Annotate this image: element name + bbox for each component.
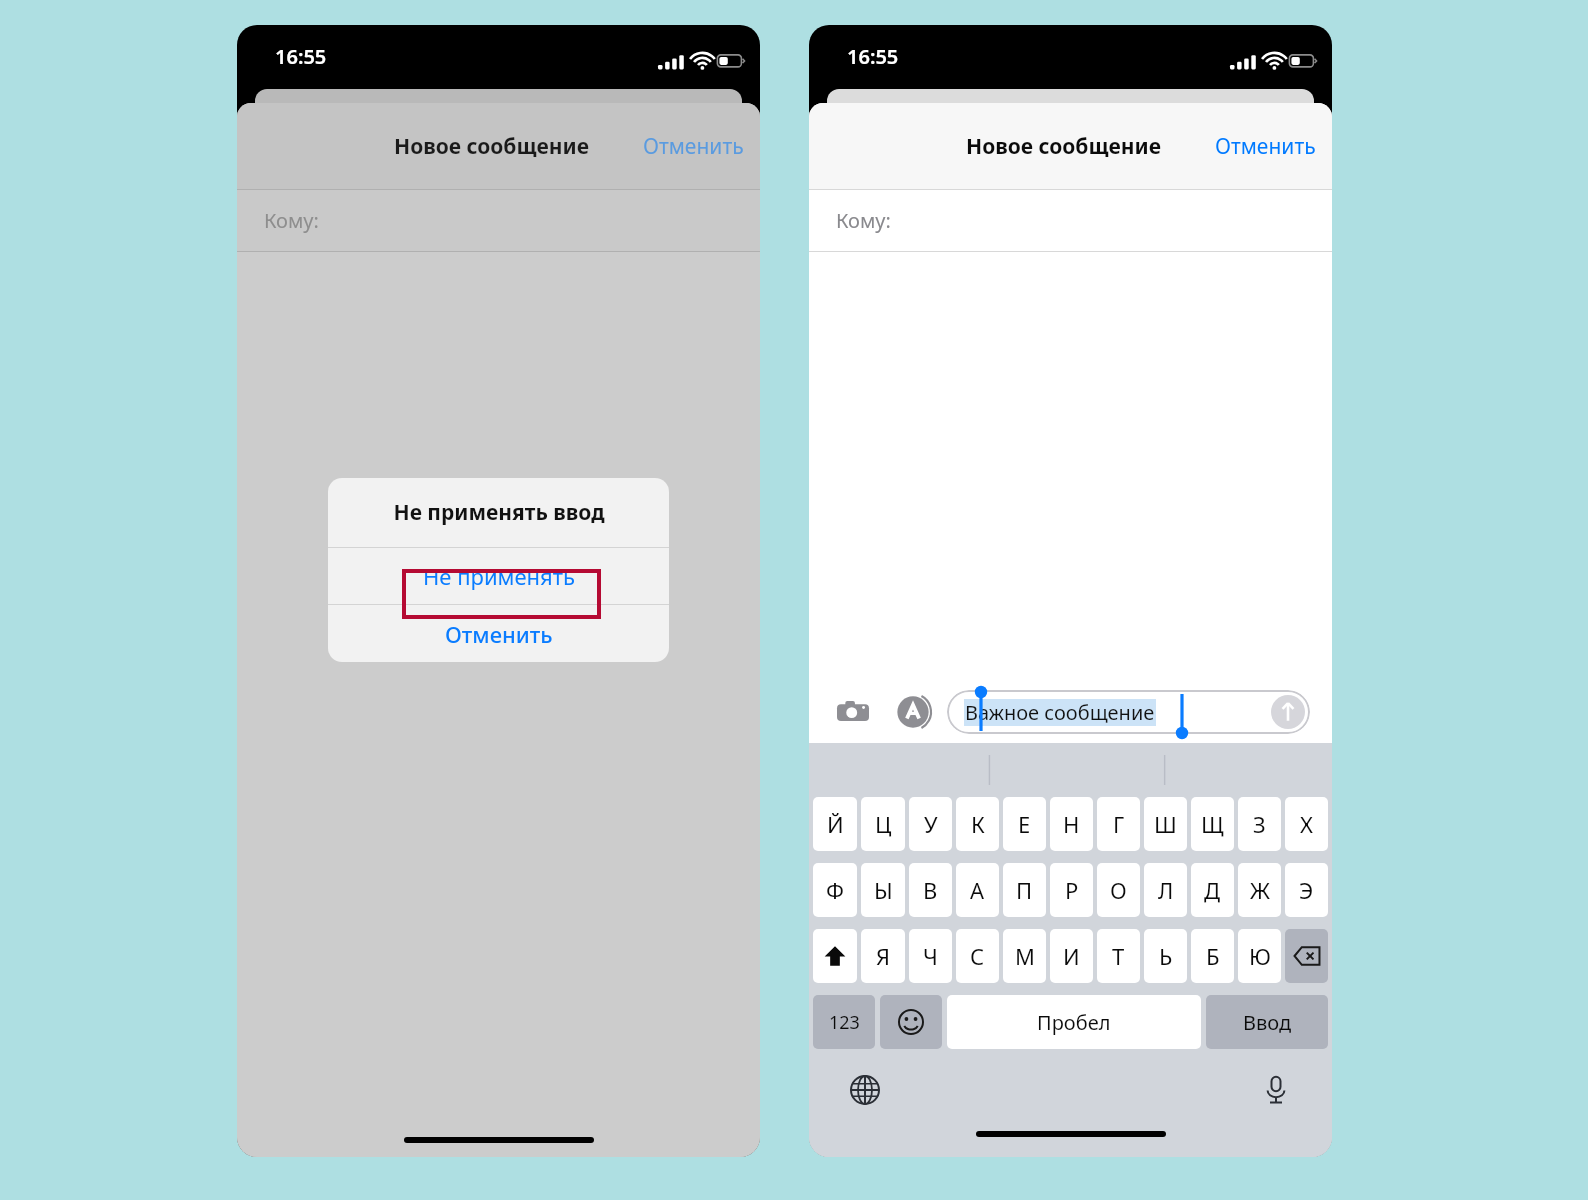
button[interactable]: Ж	[1238, 863, 1281, 917]
button[interactable]: Ф	[813, 863, 857, 917]
button[interactable]: Л	[1144, 863, 1187, 917]
staticText: У	[924, 809, 938, 839]
staticText: Я	[876, 941, 891, 971]
button[interactable]: Сменить язык	[845, 1070, 885, 1110]
button[interactable]: Ввод	[1206, 995, 1328, 1049]
staticText: П	[1016, 875, 1033, 905]
staticText: Х	[1300, 809, 1313, 839]
staticText: В	[923, 875, 938, 905]
staticText: Ж	[1250, 875, 1270, 905]
button[interactable]: Отправить	[1271, 695, 1305, 729]
button[interactable]: А	[956, 863, 999, 917]
button[interactable]: П	[1003, 863, 1046, 917]
staticText: Новое сообщение	[966, 132, 1161, 161]
staticText: Р	[1065, 875, 1079, 905]
button[interactable]: Э	[1285, 863, 1328, 917]
button[interactable]: Й	[813, 797, 857, 851]
staticText: Ы	[874, 875, 893, 905]
button[interactable]: О	[1097, 863, 1140, 917]
staticText: Пробел	[1037, 1009, 1111, 1036]
button[interactable]: Я	[861, 929, 905, 983]
staticText: И	[1063, 941, 1080, 971]
button[interactable]: Важное сообщение	[947, 690, 1310, 734]
staticText: Ц	[875, 809, 892, 839]
staticText: А	[970, 875, 985, 905]
button[interactable]: Б	[1191, 929, 1234, 983]
staticText: Не применять	[423, 561, 575, 591]
staticText: Е	[1018, 809, 1031, 839]
staticText: Б	[1206, 941, 1220, 971]
button[interactable]: Магазин приложений	[893, 692, 933, 732]
staticText: 16:55	[847, 43, 899, 70]
staticText: Г	[1113, 809, 1125, 839]
button[interactable]: Н	[1050, 797, 1093, 851]
staticText: Отменить	[1215, 132, 1316, 161]
button[interactable]: Ч	[909, 929, 952, 983]
staticText: М	[1015, 941, 1035, 971]
button[interactable]: Камера	[833, 692, 873, 732]
staticText: Ввод	[1243, 1009, 1292, 1036]
staticText: Кому:	[264, 207, 319, 234]
staticText: Щ	[1201, 809, 1224, 839]
button[interactable]: Щ	[1191, 797, 1234, 851]
button[interactable]: Shift	[813, 929, 857, 983]
staticText: Д	[1204, 875, 1221, 905]
button[interactable]: Не применять	[328, 548, 669, 604]
button[interactable]: У	[909, 797, 952, 851]
staticText: З	[1253, 809, 1266, 839]
button[interactable]: Т	[1097, 929, 1140, 983]
button[interactable]: Удалить	[1285, 929, 1328, 983]
staticText: Ь	[1159, 941, 1173, 971]
button[interactable]: В	[909, 863, 952, 917]
button[interactable]: Отменить	[1199, 122, 1332, 171]
button[interactable]: 123	[813, 995, 875, 1049]
button[interactable]: Ы	[861, 863, 905, 917]
button[interactable]: З	[1238, 797, 1281, 851]
staticText: Не применять ввод	[393, 498, 605, 527]
staticText: Л	[1158, 875, 1174, 905]
button[interactable]: Х	[1285, 797, 1328, 851]
button[interactable]: Отменить	[328, 605, 669, 662]
button[interactable]: И	[1050, 929, 1093, 983]
button[interactable]: Ь	[1144, 929, 1187, 983]
button[interactable]: Г	[1097, 797, 1140, 851]
staticText: К	[971, 809, 985, 839]
button[interactable]: С	[956, 929, 999, 983]
staticText: Отменить	[643, 132, 744, 161]
staticText: Э	[1299, 875, 1314, 905]
button[interactable]: Отменить	[627, 122, 760, 171]
staticText: Кому:	[836, 207, 891, 234]
staticText: Важное сообщение	[965, 699, 1155, 726]
staticText: Н	[1063, 809, 1080, 839]
staticText: С	[970, 941, 985, 971]
staticText: О	[1110, 875, 1127, 905]
button[interactable]: Ш	[1144, 797, 1187, 851]
staticText: Ш	[1154, 809, 1177, 839]
staticText: 16:55	[275, 43, 327, 70]
button[interactable]: М	[1003, 929, 1046, 983]
staticText: Ф	[826, 875, 844, 905]
button[interactable]: Ю	[1238, 929, 1281, 983]
button[interactable]: Пробел	[947, 995, 1201, 1049]
staticText: 123	[829, 1010, 860, 1035]
button[interactable]: Диктовка	[1256, 1070, 1296, 1110]
button[interactable]: Е	[1003, 797, 1046, 851]
button[interactable]: Ц	[861, 797, 905, 851]
button[interactable]: Р	[1050, 863, 1093, 917]
button[interactable]: К	[956, 797, 999, 851]
staticText: Ю	[1249, 941, 1271, 971]
button[interactable]: Эмодзи	[880, 995, 942, 1049]
staticText: Й	[827, 809, 844, 839]
staticText: Отменить	[445, 619, 553, 649]
button[interactable]: Д	[1191, 863, 1234, 917]
staticText: Новое сообщение	[394, 132, 589, 161]
staticText: Ч	[923, 941, 938, 971]
staticText: Т	[1112, 941, 1125, 971]
